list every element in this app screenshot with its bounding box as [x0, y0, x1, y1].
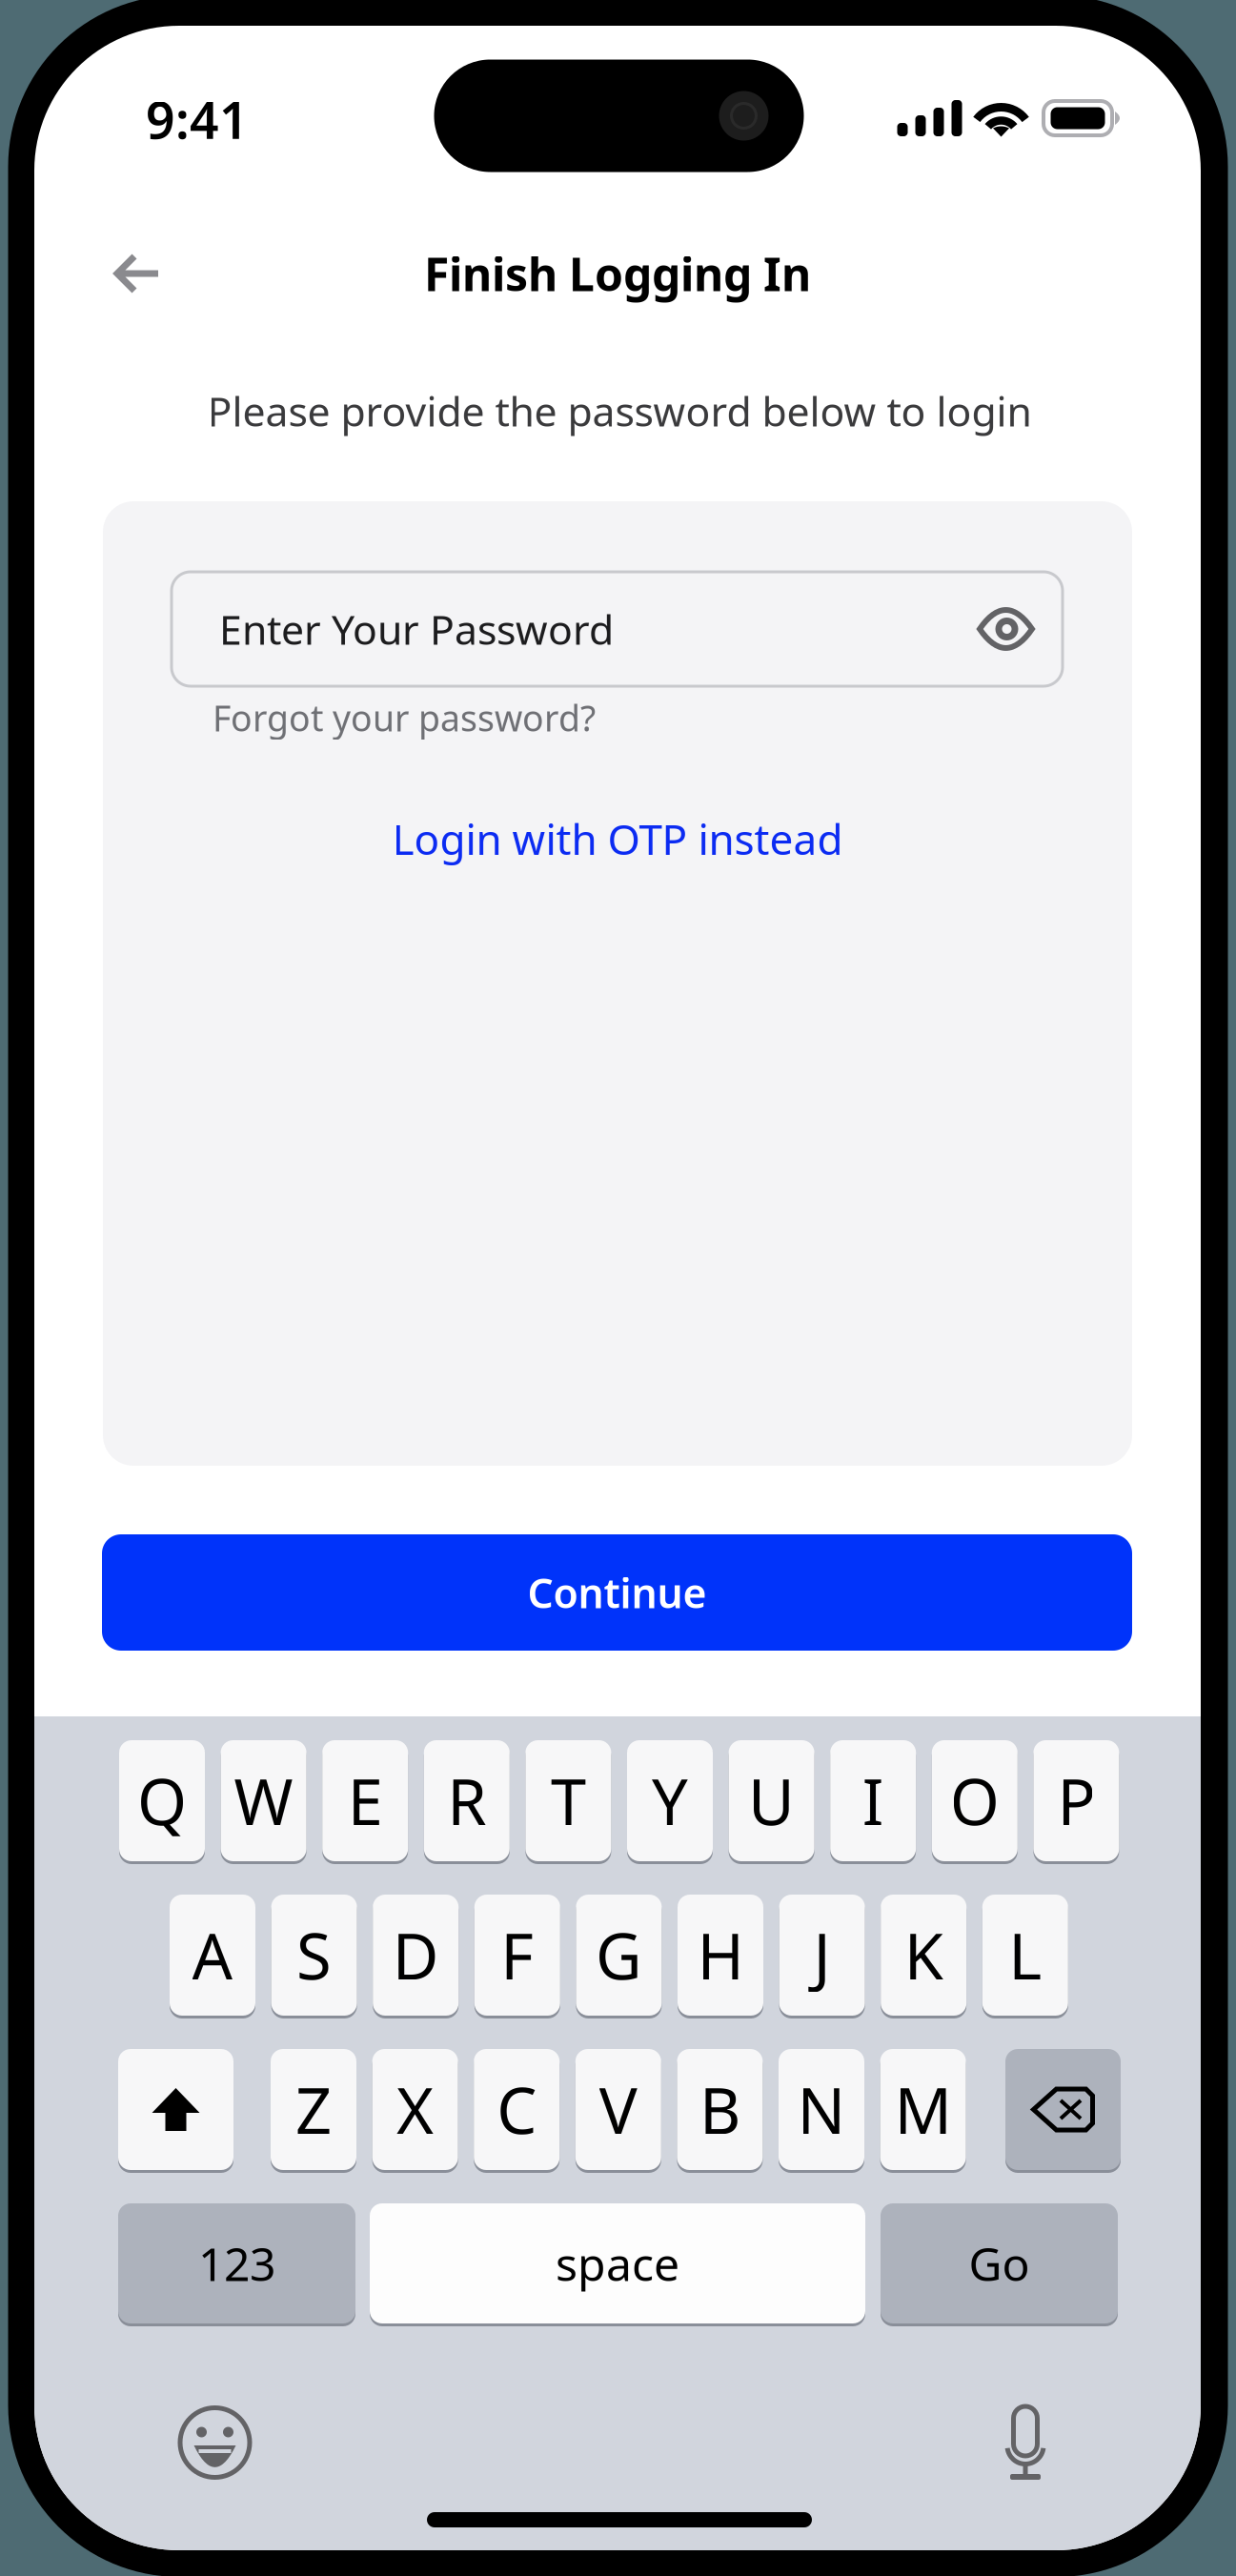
staticText: W	[234, 1759, 293, 1843]
button[interactable]: Go	[881, 2203, 1118, 2323]
button[interactable]: L	[982, 1895, 1068, 2016]
staticText: I	[862, 1759, 884, 1843]
staticText: N	[797, 2067, 846, 2152]
button[interactable]: S	[271, 1895, 357, 2016]
button[interactable]: Dictation	[1004, 2405, 1046, 2480]
staticText: S	[296, 1913, 332, 1997]
staticText: B	[699, 2067, 740, 2152]
button[interactable]: O	[932, 1740, 1018, 1861]
button[interactable]: Forgot your password?	[213, 694, 596, 741]
staticText: V	[599, 2067, 637, 2152]
button[interactable]: D	[373, 1895, 459, 2016]
button[interactable]: B	[677, 2049, 763, 2170]
button[interactable]: N	[779, 2049, 864, 2170]
button[interactable]: Y	[627, 1740, 713, 1861]
button[interactable]: C	[474, 2049, 560, 2170]
button[interactable]: P	[1033, 1740, 1119, 1861]
staticText: F	[501, 1913, 534, 1997]
staticText: K	[904, 1913, 943, 1997]
button[interactable]: F	[474, 1895, 560, 2016]
button[interactable]: Continue	[102, 1534, 1132, 1651]
button[interactable]: 123	[118, 2203, 355, 2323]
button[interactable]: W	[221, 1740, 306, 1861]
button[interactable]: Back	[86, 228, 189, 319]
staticText: X	[397, 2067, 434, 2152]
staticText: 9:41	[146, 85, 249, 153]
staticText: Q	[137, 1759, 187, 1843]
staticText: L	[1009, 1913, 1042, 1997]
staticText: E	[348, 1759, 383, 1843]
button[interactable]: Z	[271, 2049, 356, 2170]
button[interactable]: U	[729, 1740, 814, 1861]
button[interactable]: Login with OTP instead	[392, 811, 843, 866]
staticText: Forgot your password?	[213, 694, 596, 741]
button[interactable]: R	[424, 1740, 510, 1861]
button[interactable]: M	[880, 2049, 966, 2170]
button[interactable]: G	[576, 1895, 662, 2016]
button[interactable]: X	[372, 2049, 458, 2170]
button[interactable]: V	[575, 2049, 661, 2170]
staticText: space	[556, 2233, 679, 2294]
staticText: O	[950, 1759, 999, 1843]
staticText: Go	[969, 2233, 1030, 2294]
button[interactable]: space	[370, 2203, 865, 2323]
staticText: U	[748, 1759, 795, 1843]
staticText: Z	[295, 2067, 332, 2152]
staticText: H	[697, 1913, 744, 1997]
staticText: Finish Logging In	[424, 243, 811, 304]
button[interactable]: Emoji keyboard	[178, 2405, 252, 2480]
staticText: Please provide the password below to log…	[207, 384, 1032, 438]
button[interactable]: Delete	[1005, 2049, 1121, 2170]
staticText: J	[813, 1913, 831, 1997]
staticText: Enter Your Password	[219, 602, 614, 656]
button[interactable]: I	[830, 1740, 916, 1861]
staticText: P	[1057, 1759, 1095, 1843]
staticText: Y	[652, 1759, 688, 1843]
staticText: Continue	[527, 1566, 707, 1620]
staticText: 123	[198, 2233, 275, 2294]
button[interactable]: K	[881, 1895, 967, 2016]
button[interactable]: Show password	[978, 607, 1036, 651]
button[interactable]: A	[170, 1895, 255, 2016]
staticText: D	[392, 1913, 439, 1997]
staticText: M	[894, 2067, 952, 2152]
button[interactable]: J	[779, 1895, 865, 2016]
button[interactable]: H	[678, 1895, 763, 2016]
button[interactable]: Shift	[118, 2049, 233, 2170]
staticText: T	[551, 1759, 586, 1843]
staticText: R	[447, 1759, 486, 1843]
staticText: G	[596, 1913, 642, 1997]
staticText: A	[192, 1913, 233, 1997]
staticText: Login with OTP instead	[392, 811, 843, 866]
button[interactable]: E	[322, 1740, 408, 1861]
button[interactable]: T	[525, 1740, 611, 1861]
button[interactable]: Q	[119, 1740, 205, 1861]
staticText: C	[497, 2067, 537, 2152]
